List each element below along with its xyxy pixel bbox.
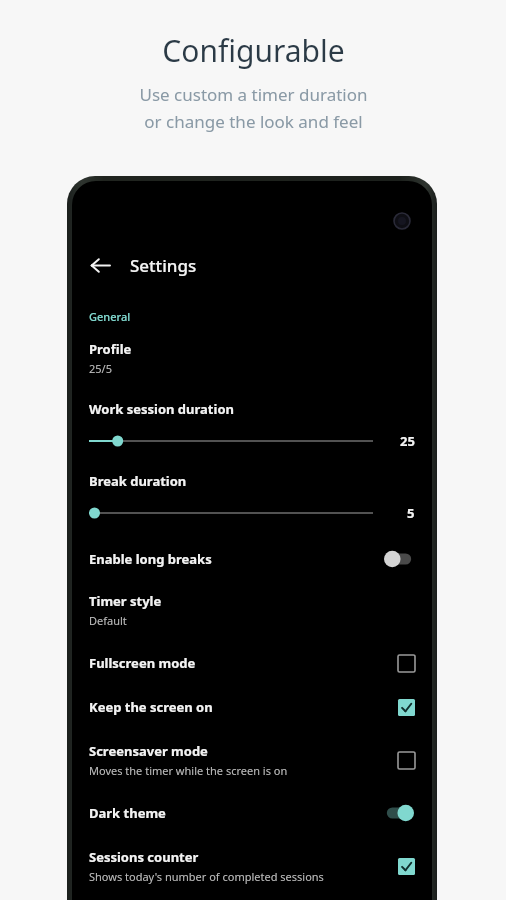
staticText: Break duration <box>89 472 187 490</box>
staticText: Fullscreen mode <box>89 654 196 672</box>
staticText: Use custom a timer duration <box>139 83 368 106</box>
staticText: Sessions counter <box>89 848 199 866</box>
button[interactable]: Work session duration <box>72 400 432 450</box>
staticText: Work session duration <box>89 400 234 418</box>
staticText: or change the look and feel <box>144 110 363 133</box>
button[interactable]: Profile <box>72 338 432 378</box>
staticText: 25 <box>400 432 415 450</box>
button[interactable]: Enable long breaks <box>72 542 432 576</box>
button[interactable]: Screensaver mode <box>72 736 432 784</box>
staticText: Configurable <box>162 30 345 71</box>
button[interactable]: Break duration <box>72 472 432 522</box>
staticText: Shows today's number of completed sessio… <box>89 869 324 884</box>
staticText: Moves the timer while the screen is on <box>89 763 288 778</box>
staticText: Timer style <box>89 592 162 610</box>
button[interactable]: Keep the screen on <box>72 692 432 722</box>
button[interactable]: Fullscreen mode <box>72 648 432 678</box>
button[interactable]: Back <box>80 245 120 285</box>
staticText: Dark theme <box>89 804 166 822</box>
button[interactable]: Sessions counter <box>72 842 432 890</box>
button[interactable]: Dark theme <box>72 796 432 830</box>
staticText: Keep the screen on <box>89 698 213 716</box>
staticText: Screensaver mode <box>89 742 208 760</box>
staticText: General <box>89 309 131 324</box>
staticText: Default <box>89 613 127 628</box>
staticText: 5 <box>407 504 415 522</box>
staticText: 25/5 <box>89 361 112 376</box>
staticText: Enable long breaks <box>89 550 212 568</box>
staticText: Settings <box>130 254 197 277</box>
button[interactable]: Timer style <box>72 590 432 630</box>
staticText: Profile <box>89 340 132 358</box>
